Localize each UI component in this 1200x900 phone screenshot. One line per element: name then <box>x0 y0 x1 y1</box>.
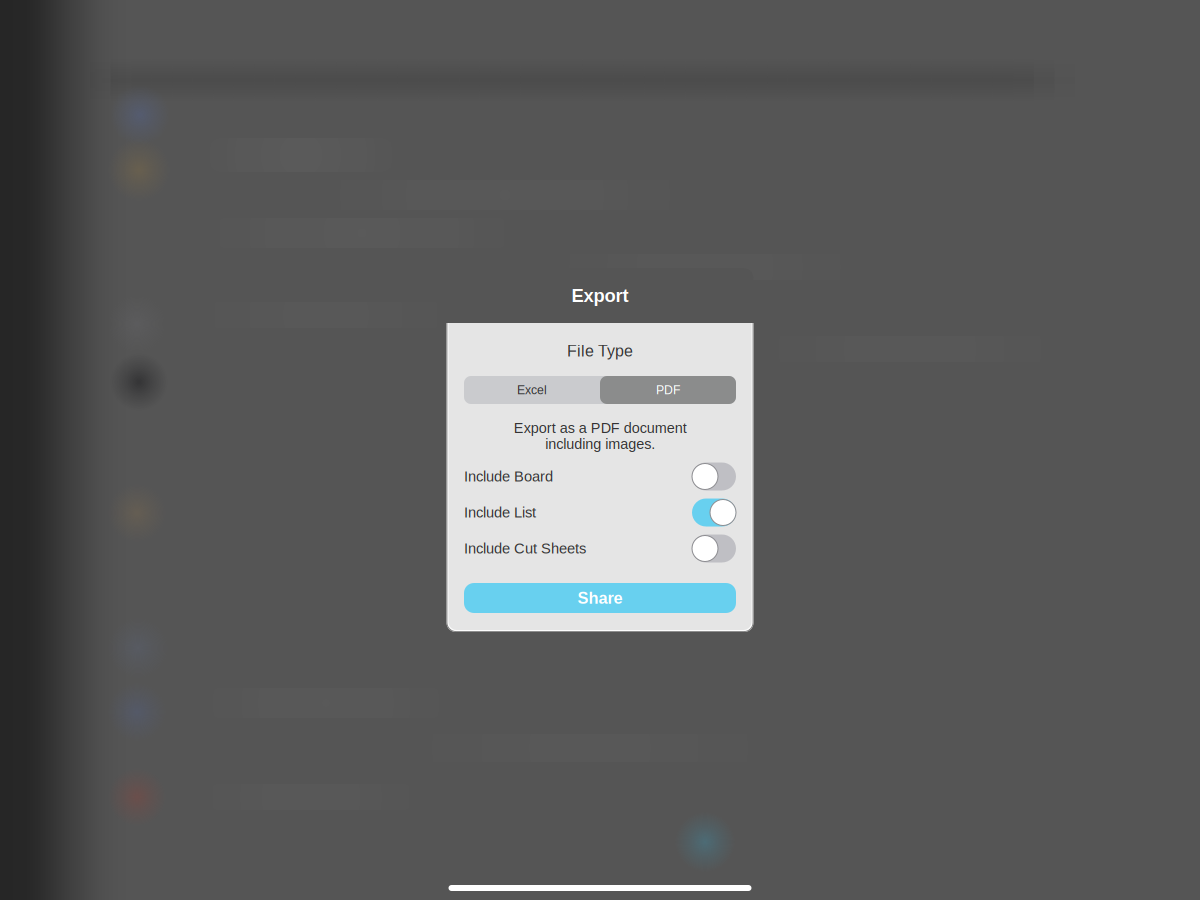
staticText: Export <box>571 285 628 306</box>
button[interactable]: PDF <box>600 376 736 404</box>
button[interactable]: Include Cut Sheets <box>692 534 736 562</box>
button[interactable]: Share <box>464 583 736 613</box>
staticText: Share <box>577 589 622 607</box>
staticText: Include Board <box>464 468 553 485</box>
button[interactable]: Include Board <box>692 462 736 490</box>
button[interactable]: Include List <box>692 498 736 526</box>
staticText: PDF <box>656 383 680 397</box>
staticText: Export as a PDF document including image… <box>513 420 686 452</box>
staticText: Excel <box>517 383 547 397</box>
staticText: File Type <box>567 342 633 360</box>
staticText: Include List <box>464 504 536 521</box>
button[interactable]: Excel <box>464 376 600 404</box>
staticText: Include Cut Sheets <box>464 540 586 557</box>
